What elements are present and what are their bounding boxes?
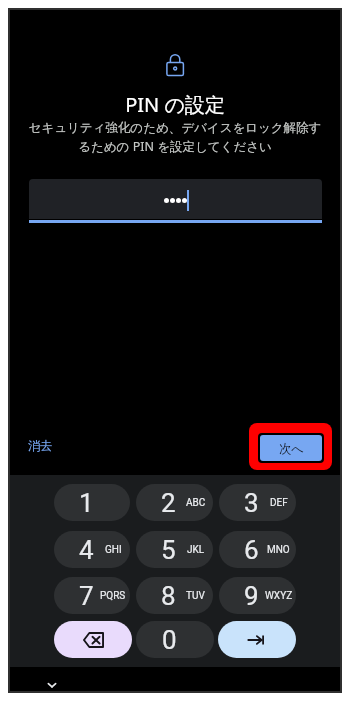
button[interactable]: 9 [219, 577, 296, 614]
button[interactable]: Next [218, 621, 296, 658]
staticText: 8 [161, 581, 176, 611]
staticText: 9 [244, 581, 259, 611]
button[interactable]: 3 [219, 484, 296, 521]
button[interactable]: 2 [136, 484, 213, 521]
staticText: GHI [105, 544, 122, 556]
other: Hide keyboard [45, 678, 59, 692]
button[interactable]: Backspace [54, 621, 132, 658]
button[interactable]: 4 [54, 531, 130, 568]
staticText: 7 [79, 581, 94, 611]
staticText: ABC [186, 497, 206, 509]
staticText: PQRS [100, 590, 126, 602]
staticText: 1 [79, 488, 94, 518]
button[interactable]: 6 [219, 531, 296, 568]
staticText: WXYZ [265, 590, 293, 602]
button[interactable]: 0 [136, 621, 214, 658]
staticText: JKL [187, 544, 205, 556]
staticText: 次へ [279, 441, 304, 456]
button[interactable]: 次へ [249, 423, 332, 470]
button[interactable]: 1 [54, 484, 130, 521]
button[interactable]: 8 [136, 577, 213, 614]
staticText: TUV [186, 590, 205, 602]
button[interactable]: 7 [54, 577, 130, 614]
staticText: 2 [161, 488, 176, 518]
button[interactable]: 消去 [22, 432, 59, 459]
button[interactable]: 5 [136, 531, 213, 568]
staticText: セキュリティ強化のため、デバイスをロック解除するための PIN を設定してくださ… [28, 120, 322, 155]
staticText: 4 [79, 535, 94, 565]
staticText: MNO [267, 544, 290, 556]
staticText: 0 [162, 625, 177, 655]
staticText: DEF [270, 497, 288, 509]
button[interactable] [29, 179, 322, 219]
staticText: 消去 [28, 438, 53, 453]
staticText: 3 [244, 488, 259, 518]
staticText: PIN の設定 [125, 91, 225, 118]
staticText: 5 [161, 535, 176, 565]
staticText: 6 [244, 535, 259, 565]
